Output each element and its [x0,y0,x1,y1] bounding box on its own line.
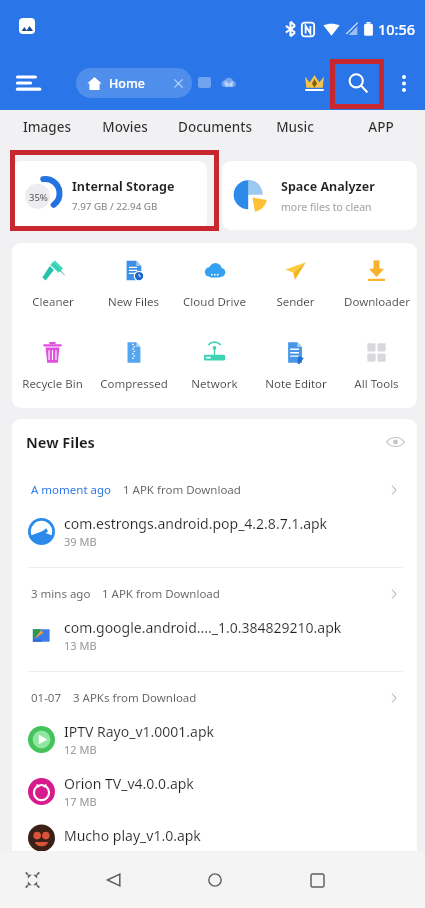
button[interactable]: Home [191,852,239,908]
button[interactable]: IPTV Rayo_v1.0001.apk [12,723,417,775]
staticText: 7.97 GB / 22.94 GB [72,200,158,213]
staticText: com.estrongs.android.pop_4.2.8.7.1.apk [64,514,328,533]
button[interactable]: Mucho play_v1.0.apk [12,827,417,851]
staticText: Movies [102,118,148,136]
button[interactable]: A moment ago [12,464,417,515]
staticText: Mucho play_v1.0.apk [64,826,201,845]
button[interactable]: Orion TV_v4.0.0.apk [12,775,417,827]
button[interactable]: 01-07 [12,672,417,723]
button[interactable]: 3 mins ago [12,568,417,619]
staticText: 1 APK from Download [102,586,220,602]
staticText: 35% [29,191,48,204]
button[interactable]: Rotate screen [8,852,56,908]
button[interactable]: Premium [294,61,334,105]
staticText: 1 APK from Download [123,482,241,498]
staticText: Downloader [344,294,410,310]
staticText: Internal Storage [72,178,175,195]
button[interactable]: Search [336,61,379,105]
staticText: Orion TV_v4.0.0.apk [64,774,194,793]
staticText: Cloud Drive [183,294,246,310]
button[interactable]: Music [255,106,335,147]
button[interactable]: Recycle Bin [12,341,93,392]
button[interactable]: Movies [85,106,165,147]
staticText: Space Analyzer [281,178,375,195]
staticText: Recycle Bin [22,376,83,392]
staticText: New Files [26,432,95,452]
staticText: Note Editor [265,376,327,392]
staticText: Sender [276,294,315,310]
staticText: Compressed [100,376,168,392]
staticText: Home [109,75,146,92]
button[interactable]: New Files [93,259,174,310]
button[interactable]: Space Analyzer [222,161,417,230]
button[interactable]: All Tools [336,341,417,392]
button[interactable]: Compressed [93,341,174,392]
staticText: Documents [178,118,252,136]
staticText: more files to clean [281,200,372,214]
button[interactable]: Recent apps [293,852,341,908]
button[interactable]: com.estrongs.android.pop_4.2.8.7.1.apk [12,515,417,567]
button[interactable]: Downloader [336,259,417,310]
staticText: Images [23,118,71,136]
button[interactable]: Hide [382,429,408,455]
staticText: Network [191,376,238,392]
staticText: 17 MB [64,794,97,809]
button[interactable]: Home [76,68,192,98]
staticText: 10:56 [378,19,416,39]
button[interactable]: Images [7,106,87,147]
staticText: APP [368,118,394,136]
button[interactable]: More options [386,61,422,105]
staticText: All Tools [354,376,399,392]
button[interactable]: APP [341,106,421,147]
button[interactable]: Network [174,341,255,392]
staticText: 39 MB [64,534,97,549]
button[interactable]: Documents [175,106,255,147]
staticText: IPTV Rayo_v1.0001.apk [64,722,215,741]
button[interactable]: com.google.android...._1.0.384829210.apk [12,619,417,671]
staticText: 3 mins ago [31,586,91,602]
staticText: 01-07 [31,690,62,706]
staticText: New Files [108,294,159,310]
button[interactable]: Note Editor [255,341,336,392]
button[interactable]: Cleaner [12,259,93,310]
staticText: Cleaner [32,294,74,310]
staticText: A moment ago [31,482,112,498]
staticText: Music [276,118,314,136]
button[interactable]: Cloud Drive [174,259,255,310]
button[interactable]: Sender [255,259,336,310]
button[interactable]: Menu [8,63,48,103]
staticText: 13 MB [64,638,97,653]
staticText: com.google.android...._1.0.384829210.apk [64,618,342,637]
button[interactable]: 35% [12,161,207,230]
staticText: 12 MB [64,742,97,757]
button[interactable]: Back [89,852,137,908]
staticText: 3 APKs from Download [73,690,197,706]
